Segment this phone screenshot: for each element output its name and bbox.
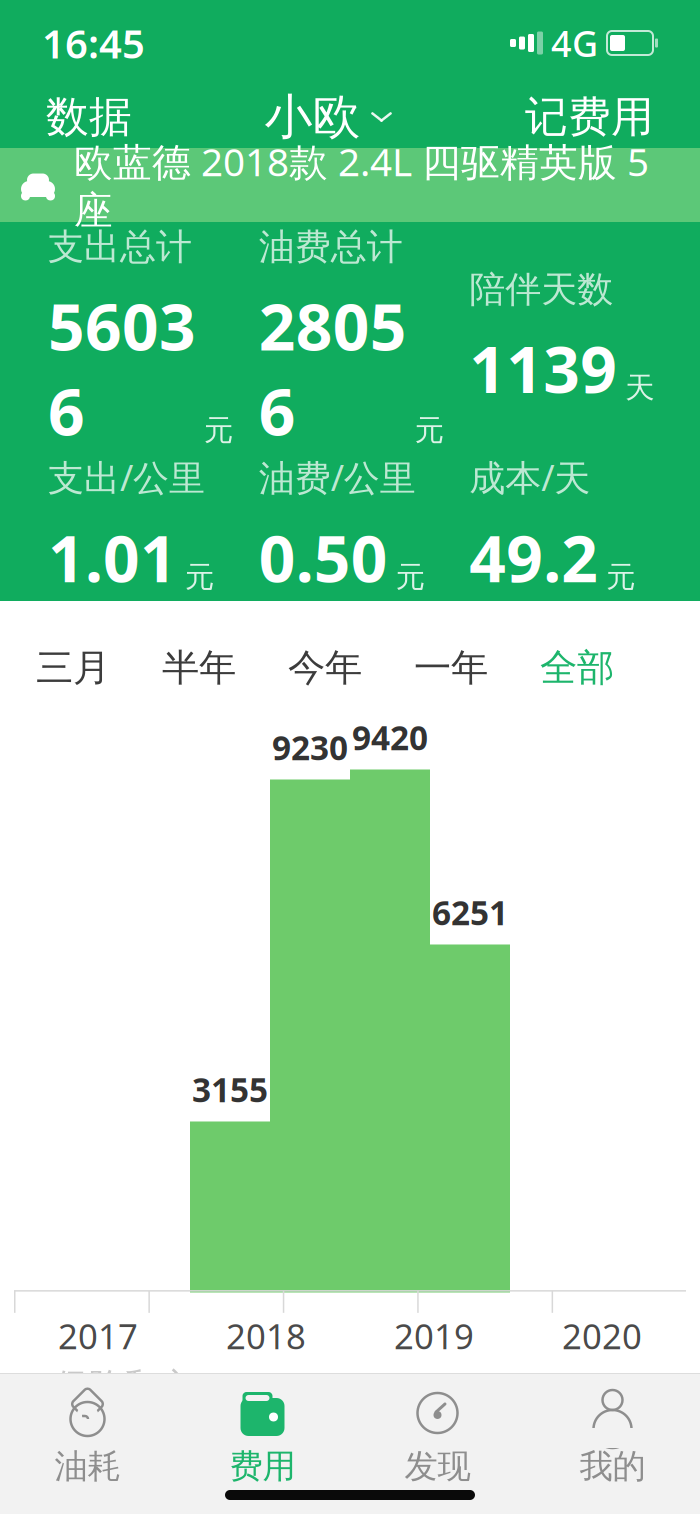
staticText: 支出/公里 bbox=[48, 453, 205, 501]
button[interactable]: 我的 bbox=[525, 1382, 700, 1487]
button[interactable]: 数据 bbox=[22, 79, 156, 155]
button[interactable]: 维修保养 bbox=[223, 1380, 420, 1435]
staticText: 半年 bbox=[162, 645, 236, 691]
staticText: 今年 bbox=[288, 645, 362, 691]
button[interactable]: 油耗 bbox=[0, 1382, 175, 1487]
staticText: 油耗 bbox=[54, 1446, 120, 1487]
staticText: 3155 bbox=[192, 1067, 268, 1111]
staticText: 三月 bbox=[36, 645, 110, 691]
staticText: 1.01 bbox=[48, 515, 177, 600]
staticText: 保险和交通规费 bbox=[54, 1365, 194, 1450]
staticText: 16:45 bbox=[42, 16, 145, 69]
staticText: 4G bbox=[551, 19, 598, 67]
button[interactable]: 费用 bbox=[175, 1382, 350, 1487]
staticText: 其它 bbox=[448, 1386, 518, 1429]
staticText: 油费 bbox=[575, 1386, 645, 1429]
staticText: 元 bbox=[185, 559, 214, 595]
button[interactable]: 半年 bbox=[148, 633, 250, 703]
staticText: 6251 bbox=[432, 890, 508, 934]
staticText: 发现 bbox=[404, 1446, 470, 1487]
button[interactable]: 其它 bbox=[420, 1380, 547, 1435]
staticText: 数据 bbox=[46, 91, 132, 143]
staticText: 56036 bbox=[48, 283, 196, 453]
staticText: 支出总计 bbox=[48, 225, 192, 269]
button[interactable]: 一年 bbox=[400, 633, 502, 703]
staticText: 一年 bbox=[414, 645, 488, 691]
staticText: 油费/公里 bbox=[259, 453, 416, 501]
staticText: 2018 bbox=[226, 1313, 306, 1359]
button[interactable]: 全部 bbox=[526, 633, 628, 703]
button[interactable]: 今年 bbox=[274, 633, 376, 703]
staticText: 费用 bbox=[229, 1446, 295, 1487]
staticText: 元 bbox=[396, 559, 425, 595]
staticText: 我的 bbox=[579, 1446, 645, 1487]
staticText: √ bbox=[400, 1389, 420, 1426]
staticText: 9420 bbox=[352, 715, 428, 759]
staticText: 记费用 bbox=[525, 91, 654, 143]
staticText: 天 bbox=[625, 370, 654, 406]
staticText: 维修保养 bbox=[251, 1386, 391, 1429]
staticText: 9230 bbox=[272, 725, 348, 769]
staticText: 元 bbox=[204, 412, 233, 448]
staticText: 元 bbox=[415, 412, 444, 448]
staticText: 元 bbox=[606, 559, 635, 595]
button[interactable]: 发现 bbox=[350, 1382, 525, 1487]
button[interactable]: 油费 bbox=[547, 1380, 674, 1435]
staticText: 1139 bbox=[469, 326, 617, 411]
staticText: 49.2 bbox=[469, 515, 598, 600]
button[interactable]: 三月 bbox=[22, 633, 124, 703]
staticText: 2017 bbox=[58, 1313, 138, 1359]
staticText: 成本/天 bbox=[469, 453, 590, 501]
staticText: 28056 bbox=[259, 283, 407, 453]
button[interactable]: 保险和交通规费 bbox=[26, 1359, 223, 1456]
button[interactable]: 记费用 bbox=[501, 79, 678, 155]
staticText: 油费总计 bbox=[259, 225, 403, 269]
staticText: 2019 bbox=[394, 1313, 474, 1359]
staticText: 陪伴天数 bbox=[469, 267, 613, 312]
staticText: 欧蓝德 2018款 2.4L 四驱精英版 5座 bbox=[74, 136, 649, 234]
staticText: 2020 bbox=[562, 1313, 642, 1359]
button[interactable]: 小欧 bbox=[244, 77, 412, 156]
staticText: 0.50 bbox=[259, 515, 388, 600]
staticText: 全部 bbox=[540, 645, 614, 691]
staticText: 小欧 bbox=[264, 87, 360, 146]
